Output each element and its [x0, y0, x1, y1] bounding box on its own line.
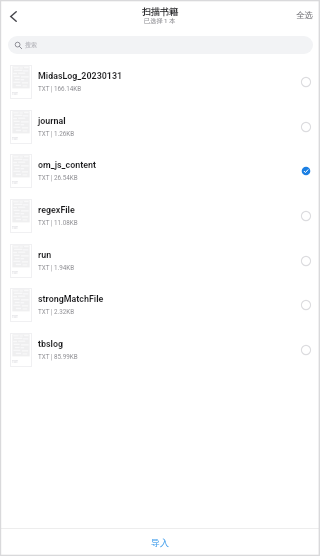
staticText: 扫描书籍 [142, 6, 178, 17]
button[interactable]: Select [295, 339, 317, 361]
button[interactable]: TXT [0, 148, 320, 193]
staticText: TXT [12, 271, 18, 275]
button[interactable]: TXT [0, 238, 320, 283]
button[interactable]: TXT [0, 59, 320, 104]
staticText: om_js_content [38, 160, 96, 170]
button[interactable]: 全选 [286, 0, 320, 32]
staticText: 全选 [296, 10, 313, 21]
staticText: TXT [12, 315, 18, 319]
button[interactable]: 搜索 [8, 36, 313, 54]
button[interactable]: Select [295, 71, 317, 93]
button[interactable]: Selected [295, 160, 317, 182]
staticText: TXT | 11.08KB [38, 219, 78, 226]
staticText: run [38, 250, 52, 260]
staticText: 搜索 [25, 41, 37, 49]
staticText: 已选择 1 本 [144, 17, 176, 25]
button[interactable]: Select [295, 250, 317, 272]
staticText: 导入 [151, 537, 169, 548]
staticText: MidasLog_20230131 [38, 71, 123, 81]
staticText: TXT | 85.99KB [38, 353, 78, 360]
button[interactable]: TXT [0, 193, 320, 238]
staticText: TXT | 2.32KB [38, 308, 75, 315]
staticText: strongMatchFile [38, 294, 104, 304]
button[interactable]: Back [0, 0, 26, 32]
staticText: TXT | 1.94KB [38, 264, 75, 271]
button[interactable]: 导入 [0, 529, 320, 556]
button[interactable]: TXT [0, 282, 320, 327]
staticText: TXT [12, 226, 18, 230]
button[interactable]: TXT [0, 327, 320, 372]
staticText: TXT [12, 92, 18, 96]
button[interactable]: Select [295, 205, 317, 227]
staticText: TXT [12, 181, 18, 185]
staticText: tbslog [38, 339, 64, 349]
staticText: regexFile [38, 205, 75, 215]
button[interactable]: Select [295, 116, 317, 138]
staticText: TXT | 166.14KB [38, 85, 82, 92]
button[interactable]: TXT [0, 104, 320, 149]
staticText: TXT [12, 360, 18, 364]
staticText: TXT [12, 137, 18, 141]
staticText: TXT | 1.26KB [38, 130, 75, 137]
button[interactable]: Select [295, 294, 317, 316]
staticText: TXT | 26.54KB [38, 174, 78, 181]
staticText: journal [38, 116, 66, 126]
